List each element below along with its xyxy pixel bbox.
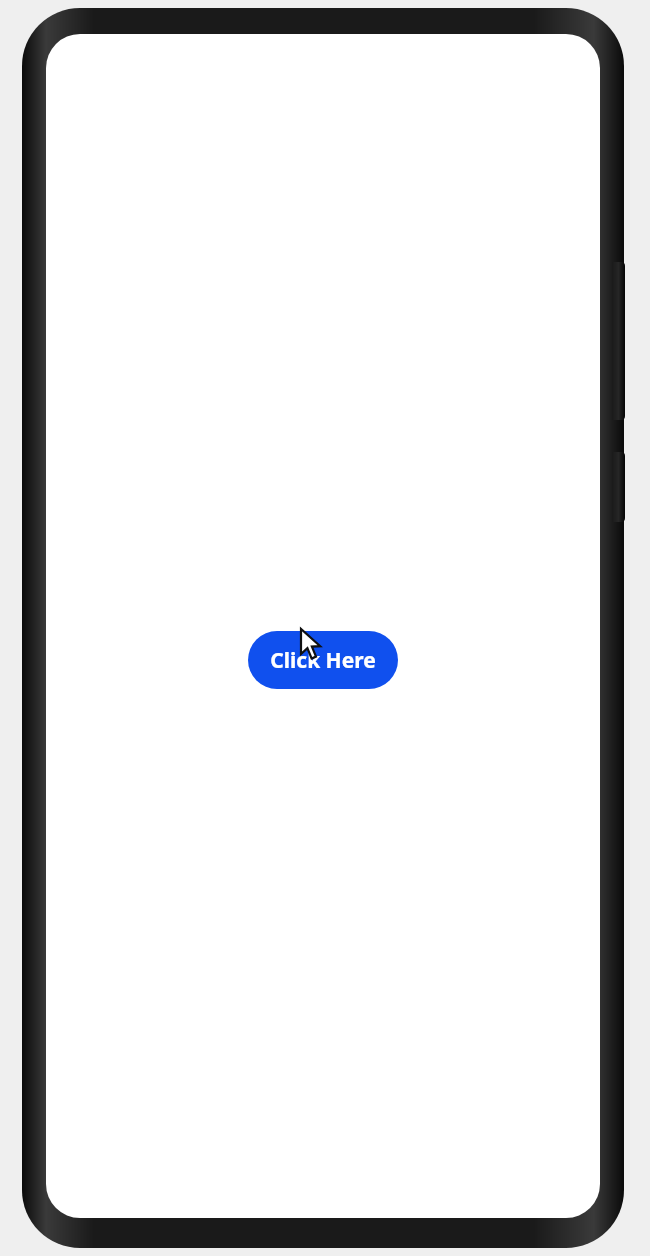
other: Power button [612,452,625,522]
staticText: Click Here [270,646,376,675]
button[interactable]: Click Here [248,631,398,689]
other: Volume buttons [612,262,625,420]
